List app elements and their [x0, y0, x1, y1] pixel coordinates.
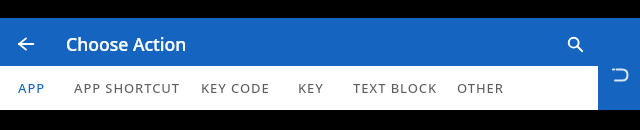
other: Loading	[598, 66, 640, 110]
button[interactable]: OTHER	[447, 66, 513, 110]
staticText: OTHER	[457, 79, 504, 97]
button[interactable]: APP SHORTCUT	[64, 66, 191, 110]
staticText: TEXT BLOCK	[353, 79, 438, 97]
button[interactable]: KEY CODE	[191, 66, 279, 110]
button[interactable]: APP	[0, 66, 64, 110]
staticText: Choose Action	[66, 32, 187, 56]
staticText: KEY CODE	[201, 79, 270, 97]
staticText: APP SHORTCUT	[74, 79, 181, 97]
staticText: APP	[18, 79, 46, 97]
button[interactable]: KEY	[279, 66, 343, 110]
staticText: KEY	[298, 79, 324, 97]
button[interactable]: Navigate up	[2, 18, 50, 66]
button[interactable]: Search	[551, 18, 599, 66]
button[interactable]: TEXT BLOCK	[343, 66, 447, 110]
